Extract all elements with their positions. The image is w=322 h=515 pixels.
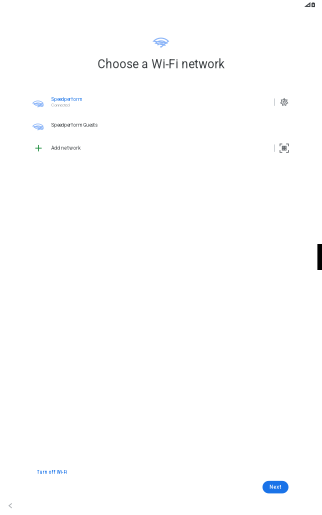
button[interactable]: Next: [262, 481, 288, 493]
button[interactable]: Turn off Wi-Fi: [37, 467, 67, 477]
staticText: Choose a Wi-Fi network: [97, 57, 224, 71]
staticText: Speedperform Guests: [51, 122, 97, 128]
staticText: Next: [269, 484, 281, 490]
button[interactable]: Speedperform: [0, 91, 322, 114]
button[interactable]: Back: [5, 499, 16, 512]
button[interactable]: Speedperform Guests: [0, 114, 322, 137]
staticText: Connected: [51, 103, 69, 108]
button[interactable]: Add network: [0, 137, 322, 160]
staticText: Turn off Wi-Fi: [37, 469, 67, 475]
staticText: Speedperform: [51, 97, 82, 102]
staticText: Add network: [51, 145, 80, 151]
